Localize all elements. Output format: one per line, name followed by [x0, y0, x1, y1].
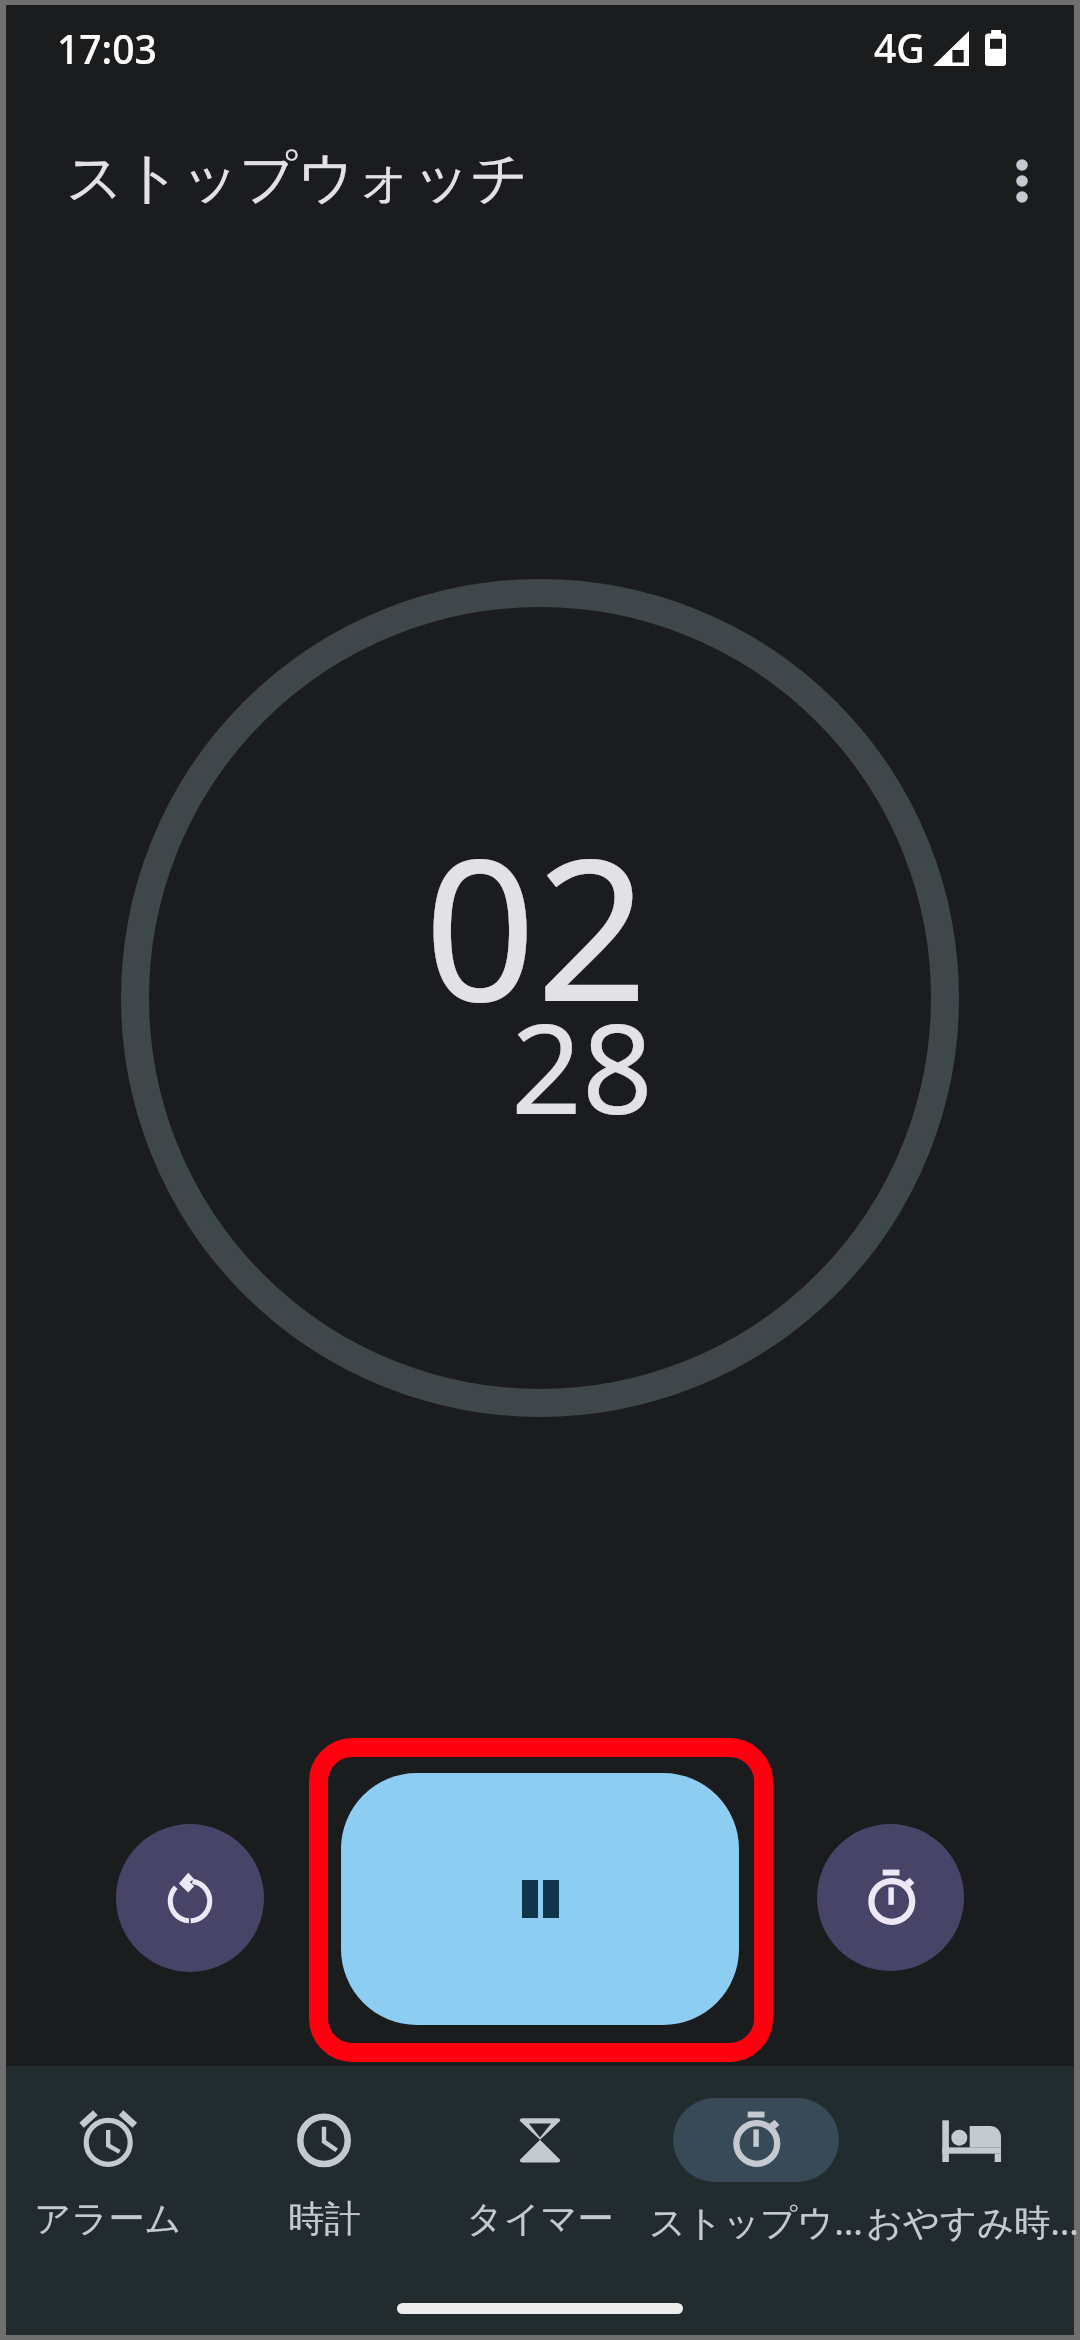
button[interactable]: Reset: [116, 1824, 264, 1972]
button[interactable]: Lap: [817, 1824, 964, 1971]
staticText: アラーム: [34, 2196, 182, 2242]
staticText: ストップウォッチ: [66, 143, 529, 214]
button[interactable]: ストップウ…: [648, 2066, 864, 2269]
staticText: おやすみ時…: [866, 2196, 1079, 2245]
button[interactable]: More options: [974, 133, 1070, 229]
button[interactable]: タイマー: [432, 2066, 648, 2269]
staticText: 4G: [874, 21, 925, 74]
button[interactable]: アラーム: [0, 2066, 216, 2269]
staticText: 17:03: [57, 22, 157, 75]
button[interactable]: おやすみ時…: [864, 2066, 1080, 2269]
staticText: ストップウ…: [649, 2196, 863, 2245]
staticText: 02: [424, 791, 649, 1058]
staticText: 28: [511, 981, 653, 1150]
staticText: 時計: [288, 2196, 361, 2242]
staticText: タイマー: [466, 2196, 614, 2242]
button[interactable]: Pause: [341, 1773, 739, 2025]
button[interactable]: 時計: [216, 2066, 432, 2269]
